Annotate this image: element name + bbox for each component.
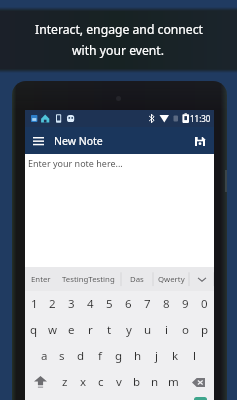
staticText: l (193, 348, 196, 364)
staticText: Interact, engage and connect (35, 21, 203, 38)
button[interactable]: 8 (157, 291, 176, 317)
button[interactable]: k (166, 343, 185, 369)
button[interactable]: f (90, 343, 109, 369)
button[interactable]: n (146, 369, 164, 395)
button[interactable]: y (119, 317, 138, 343)
staticText: i (165, 322, 168, 338)
staticText: 6 (125, 296, 132, 312)
staticText: TestingTesting (62, 274, 115, 285)
staticText: c (98, 374, 104, 390)
button[interactable]: Enter (194, 397, 207, 400)
staticText: with your event. (72, 42, 165, 59)
button[interactable]: p (195, 317, 214, 343)
button[interactable]: Menu (31, 134, 45, 148)
staticText: New Note (54, 134, 103, 148)
staticText: r (88, 322, 93, 338)
button[interactable]: m (164, 369, 182, 395)
staticText: Enter your note here... (28, 157, 123, 169)
button[interactable]: 3 (62, 291, 81, 317)
button[interactable]: j (147, 343, 166, 369)
staticText: o (182, 322, 189, 338)
button[interactable]: x (74, 369, 92, 395)
button[interactable]: w (43, 317, 62, 343)
button[interactable]: 9 (176, 291, 195, 317)
button[interactable]: o (176, 317, 195, 343)
button[interactable]: Das (121, 267, 153, 291)
staticText: v (116, 374, 122, 390)
staticText: Das (130, 274, 144, 285)
button[interactable]: e (62, 317, 81, 343)
button[interactable]: a (35, 343, 53, 369)
button[interactable]: Shift (25, 369, 55, 395)
button[interactable]: t (100, 317, 119, 343)
button[interactable]: 2 (43, 291, 62, 317)
staticText: j (155, 348, 158, 364)
button[interactable]: s (53, 343, 71, 369)
staticText: e (68, 322, 75, 338)
staticText: 5 (106, 296, 113, 312)
button[interactable]: h (128, 343, 147, 369)
button[interactable]: 6 (119, 291, 138, 317)
button[interactable]: Backspace (182, 369, 214, 395)
button[interactable]: q (25, 317, 43, 343)
button[interactable]: r (81, 317, 100, 343)
button[interactable]: c (92, 369, 110, 395)
staticText: u (144, 322, 152, 338)
button[interactable]: Enter (25, 267, 56, 291)
staticText: 9 (182, 296, 189, 312)
button[interactable]: u (138, 317, 157, 343)
staticText: Enter (31, 274, 51, 285)
staticText: 2 (49, 296, 56, 312)
button[interactable]: TestingTesting (56, 267, 121, 291)
staticText: p (201, 322, 209, 338)
button[interactable]: 7 (138, 291, 157, 317)
button[interactable]: d (71, 343, 90, 369)
button[interactable]: z (55, 369, 74, 395)
staticText: x (80, 374, 87, 390)
staticText: t (107, 322, 112, 338)
staticText: 1 (31, 296, 38, 312)
button[interactable]: b (128, 369, 146, 395)
staticText: h (134, 348, 142, 364)
staticText: 11:30 (190, 113, 211, 124)
staticText: g (115, 348, 123, 364)
staticText: 3 (68, 296, 75, 312)
button[interactable]: More suggestions (189, 267, 214, 291)
button[interactable]: 5 (100, 291, 119, 317)
staticText: f (98, 348, 102, 364)
staticText: a (41, 348, 48, 364)
staticText: m (168, 374, 179, 390)
staticText: w (48, 322, 58, 338)
button[interactable]: l (185, 343, 204, 369)
staticText: q (30, 322, 38, 338)
staticText: 8 (163, 296, 170, 312)
staticText: 0 (201, 296, 208, 312)
button[interactable]: v (110, 369, 128, 395)
button[interactable]: 0 (195, 291, 214, 317)
button[interactable]: 1 (25, 291, 43, 317)
button[interactable]: g (109, 343, 128, 369)
button[interactable]: i (157, 317, 176, 343)
staticText: y (126, 322, 132, 338)
staticText: 7 (144, 296, 151, 312)
button[interactable]: Qwerty (153, 267, 189, 291)
button[interactable]: Save (193, 134, 207, 148)
staticText: 4 (87, 296, 94, 312)
staticText: d (77, 348, 85, 364)
button[interactable]: 4 (81, 291, 100, 317)
staticText: Qwerty (158, 274, 185, 285)
staticText: s (59, 348, 65, 364)
staticText: n (151, 374, 159, 390)
staticText: k (172, 348, 179, 364)
staticText: b (133, 374, 141, 390)
staticText: z (62, 374, 68, 390)
